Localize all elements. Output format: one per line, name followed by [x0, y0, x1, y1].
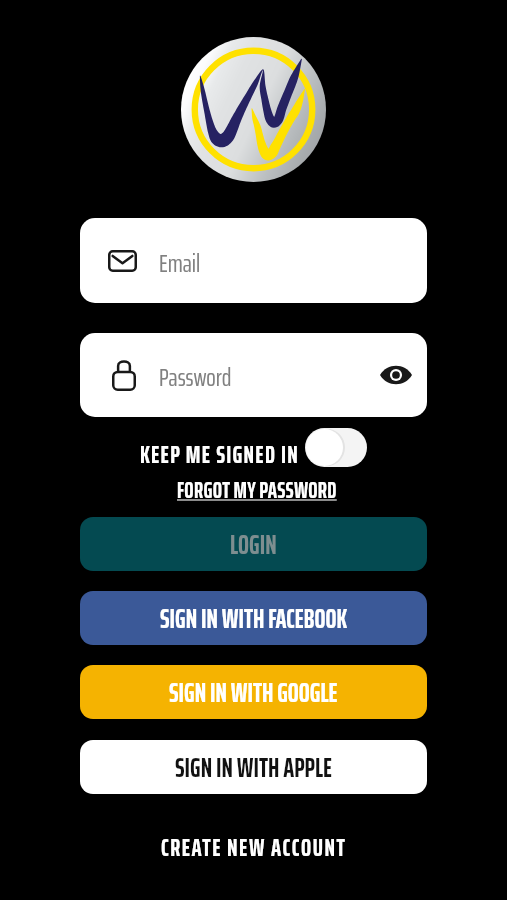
- button[interactable]: CREATE NEW ACCOUNT: [161, 829, 347, 867]
- button[interactable]: FORGOT MY PASSWORD: [177, 473, 337, 508]
- staticText: SIGN IN WITH FACEBOOK: [160, 598, 348, 639]
- staticText: SIGN IN WITH APPLE: [175, 747, 333, 788]
- button[interactable]: LOGIN: [80, 517, 427, 571]
- button[interactable]: SIGN IN WITH FACEBOOK: [80, 591, 427, 645]
- button[interactable]: Show password: [376, 355, 416, 395]
- staticText: KEEP ME SIGNED IN: [140, 436, 300, 474]
- staticText: CREATE NEW ACCOUNT: [161, 829, 347, 867]
- button[interactable]: Password: [80, 333, 427, 417]
- staticText: LOGIN: [230, 524, 277, 565]
- button[interactable]: Keep me signed in toggle: [305, 428, 367, 467]
- button[interactable]: SIGN IN WITH GOOGLE: [80, 665, 427, 719]
- button[interactable]: Email: [80, 218, 427, 303]
- staticText: Email: [159, 244, 201, 283]
- staticText: SIGN IN WITH GOOGLE: [169, 672, 338, 713]
- button[interactable]: SIGN IN WITH APPLE: [80, 740, 427, 794]
- staticText: Password: [159, 358, 232, 397]
- staticText: FORGOT MY PASSWORD: [177, 473, 337, 508]
